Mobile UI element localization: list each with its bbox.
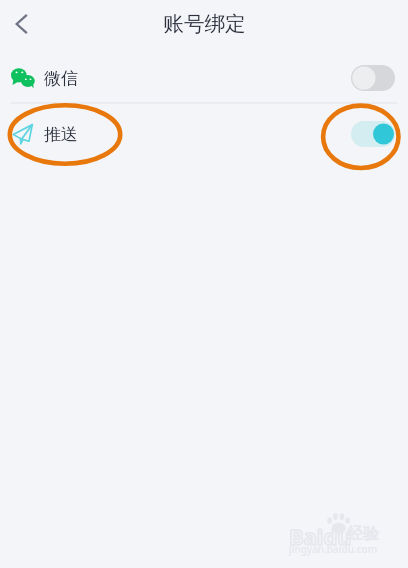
button[interactable]: 微信 [0,50,408,106]
button[interactable]: On [351,121,395,147]
staticText: 推送 [44,124,78,145]
staticText: Baidu [289,521,352,551]
staticText: jingyan.baidu.com [289,542,378,556]
staticText: 微信 [44,68,78,89]
button[interactable]: Off [351,65,395,91]
staticText: 账号绑定 [163,11,246,37]
button[interactable]: 推送 [0,106,408,162]
button[interactable]: Back [0,2,44,46]
staticText: 经验 [347,524,379,544]
